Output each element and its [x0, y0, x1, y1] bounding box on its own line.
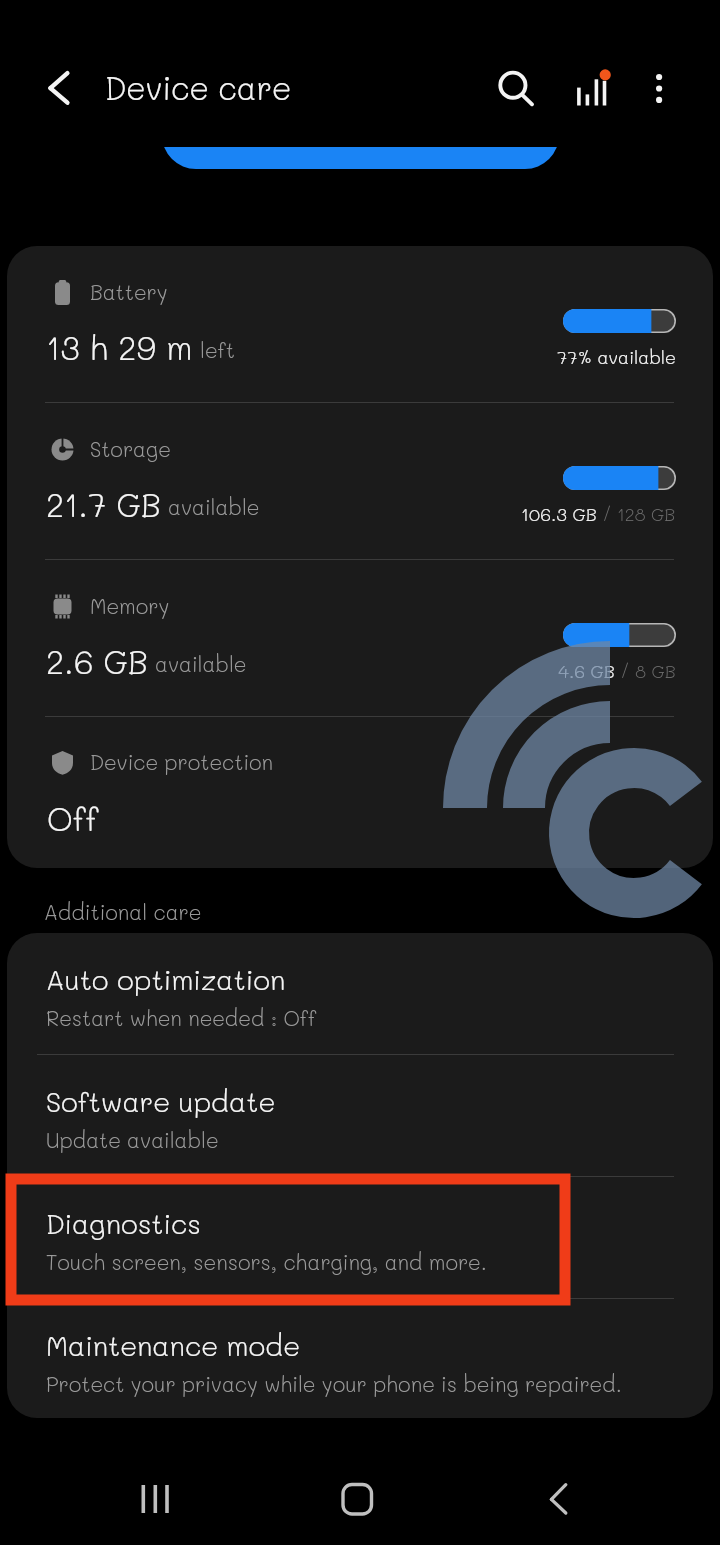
- staticText: 2.6 GB: [46, 639, 148, 682]
- button[interactable]: Back: [480, 1418, 720, 1545]
- button[interactable]: Search: [478, 50, 548, 120]
- staticText: Protect your privacy while your phone is…: [46, 1370, 622, 1397]
- staticText: Storage: [90, 435, 171, 462]
- staticText: Off: [47, 796, 99, 839]
- button[interactable]: Memory: [7, 560, 713, 716]
- button[interactable]: Diagnostics: [7, 1177, 713, 1298]
- staticText: 4.6 GB: [558, 659, 615, 682]
- staticText: available: [155, 650, 247, 677]
- staticText: Update available: [46, 1126, 219, 1153]
- button[interactable]: Device protection: [7, 717, 713, 868]
- button[interactable]: Software update: [7, 1055, 713, 1176]
- button[interactable]: Battery: [7, 246, 713, 402]
- staticText: available: [168, 493, 260, 520]
- staticText: Battery: [90, 278, 168, 305]
- staticText: Auto optimization: [46, 961, 286, 997]
- button[interactable]: Auto optimization: [7, 933, 713, 1054]
- staticText: Additional care: [44, 898, 202, 925]
- button[interactable]: Recent apps: [0, 1418, 240, 1545]
- staticText: / 128 GB: [597, 502, 676, 525]
- button[interactable]: Performance report: [556, 50, 626, 120]
- staticText: Software update: [46, 1083, 276, 1119]
- staticText: Device protection: [90, 748, 274, 775]
- staticText: Device care: [105, 66, 292, 108]
- button[interactable]: Maintenance mode: [7, 1299, 713, 1418]
- staticText: Maintenance mode: [46, 1327, 300, 1363]
- button[interactable]: Storage: [7, 403, 713, 559]
- staticText: Restart when needed : Off: [46, 1004, 317, 1031]
- staticText: Touch screen, sensors, charging, and mor…: [46, 1248, 487, 1275]
- button[interactable]: Home: [240, 1418, 480, 1545]
- staticText: 106.3 GB: [521, 502, 597, 525]
- staticText: Diagnostics: [46, 1205, 201, 1241]
- staticText: 13 h 29 m: [46, 325, 193, 368]
- staticText: Memory: [90, 592, 170, 619]
- button[interactable]: More options: [624, 50, 694, 120]
- staticText: / 8 GB: [615, 659, 676, 682]
- staticText: 77% available: [557, 345, 676, 368]
- staticText: 21.7 GB: [46, 482, 161, 525]
- button[interactable]: Navigate up: [16, 53, 86, 123]
- staticText: left: [200, 336, 235, 363]
